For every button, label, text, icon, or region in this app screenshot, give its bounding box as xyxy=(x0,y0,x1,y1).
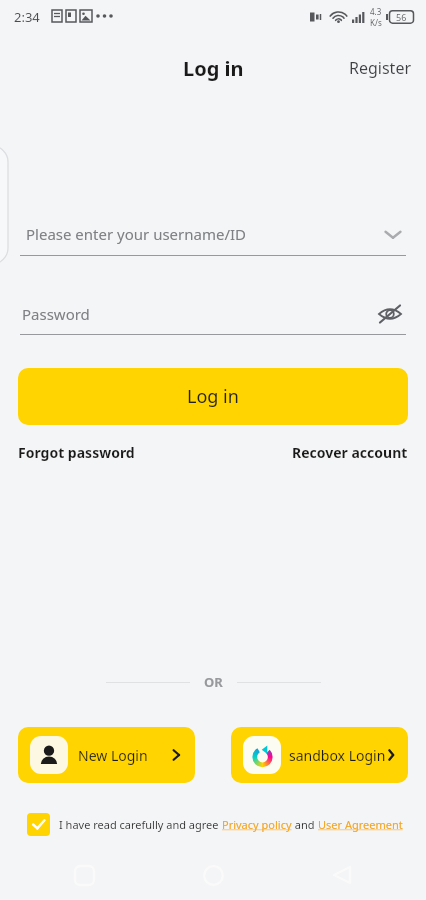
button[interactable]: Forgot password xyxy=(18,440,135,465)
button[interactable]: Register xyxy=(335,51,426,85)
staticText: I have read carefully and agree xyxy=(59,817,222,832)
button[interactable]: Recover account xyxy=(292,440,408,465)
staticText: Password xyxy=(22,304,90,324)
staticText: OR xyxy=(204,673,223,691)
button[interactable]: Please enter your username/ID xyxy=(20,212,406,256)
button[interactable]: User Agreement xyxy=(318,817,403,832)
button[interactable]: New Login xyxy=(18,727,195,783)
button[interactable]: Agree to terms xyxy=(27,813,50,836)
other: Show saved accounts xyxy=(382,223,404,245)
staticText: K/s xyxy=(370,17,382,28)
staticText: Log in xyxy=(183,55,244,82)
button[interactable]: Show password xyxy=(374,298,406,330)
staticText: Please enter your username/ID xyxy=(26,224,247,244)
staticText: User Agreement xyxy=(318,817,403,832)
staticText: Forgot password xyxy=(18,443,135,462)
button[interactable]: Password xyxy=(20,292,406,336)
button[interactable]: Privacy policy xyxy=(222,817,292,832)
staticText: Privacy policy xyxy=(222,817,292,832)
staticText: New Login xyxy=(78,746,148,765)
button[interactable]: sandbox Login xyxy=(231,727,408,783)
staticText: Register xyxy=(349,57,412,79)
staticText: 2:34 xyxy=(14,8,40,26)
staticText: Recover account xyxy=(292,443,408,462)
staticText: Log in xyxy=(187,384,239,409)
staticText: 56 xyxy=(396,11,407,23)
button[interactable]: Log in xyxy=(18,368,408,425)
staticText: 4.3 xyxy=(370,6,382,17)
staticText: and xyxy=(292,817,318,832)
staticText: sandbox Login xyxy=(289,746,386,765)
